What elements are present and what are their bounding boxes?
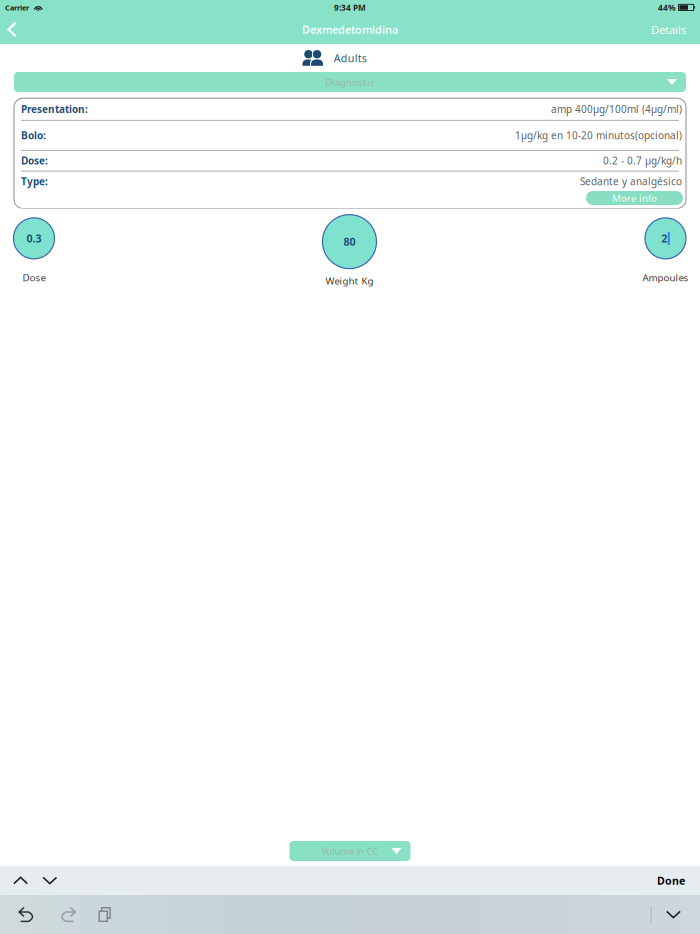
staticText: 0.2 - 0.7 µg/kg/h — [603, 154, 682, 167]
staticText: 9:34 PM — [334, 2, 366, 13]
button[interactable]: Paste — [86, 896, 123, 933]
staticText: Details — [651, 22, 686, 37]
button[interactable]: Dismiss keyboard — [652, 899, 693, 930]
button[interactable]: Done — [644, 865, 698, 896]
button[interactable]: Back — [0, 16, 27, 42]
staticText: Bolo: — [21, 128, 46, 142]
staticText: More info — [612, 191, 657, 205]
staticText: Type: — [21, 174, 48, 188]
staticText: 2 — [661, 231, 667, 246]
staticText: 44% — [658, 2, 675, 13]
staticText: Presentation: — [21, 102, 88, 116]
button[interactable]: Details — [637, 17, 700, 42]
staticText: Carrier — [5, 2, 29, 13]
button[interactable]: Next field — [35, 866, 64, 895]
staticText: 0.3 — [26, 231, 41, 246]
staticText: Diagnostic — [325, 75, 375, 89]
staticText: Done — [657, 873, 685, 888]
staticText: 80 — [343, 234, 355, 249]
staticText: Ampoules — [642, 271, 688, 284]
staticText: Weight Kg — [325, 274, 373, 287]
button[interactable]: Volume in CC — [289, 841, 410, 861]
button[interactable]: More info — [586, 191, 683, 205]
staticText: 1µg/kg en 10-20 minutos(opcional) — [515, 128, 682, 142]
staticText: Dose — [22, 271, 45, 284]
button[interactable]: Redo — [47, 896, 86, 933]
staticText: Dexmedetomidina — [302, 22, 398, 37]
button[interactable]: Undo — [8, 896, 47, 933]
staticText: Sedante y analgésico — [580, 174, 682, 188]
staticText: Adults — [334, 51, 367, 65]
button[interactable]: Previous field — [6, 866, 35, 895]
staticText: amp 400µg/100ml (4µg/ml) — [551, 102, 682, 116]
button[interactable]: Diagnostic — [14, 72, 686, 92]
staticText: Volume in CC — [321, 845, 378, 857]
staticText: Dose: — [21, 154, 48, 167]
